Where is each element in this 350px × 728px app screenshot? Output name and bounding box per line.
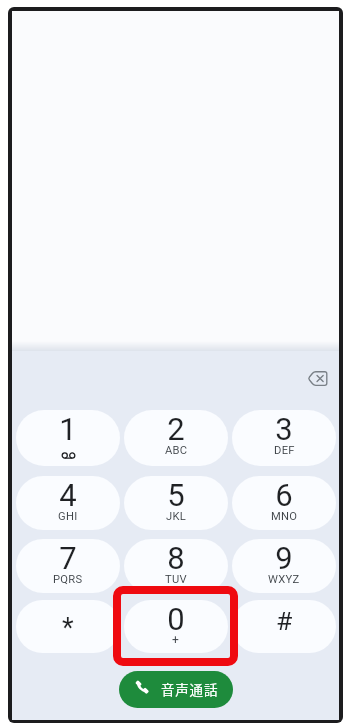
staticText: MNO: [271, 510, 298, 523]
staticText: +: [172, 633, 180, 647]
staticText: #: [276, 605, 293, 636]
staticText: 3: [275, 411, 293, 447]
staticText: JKL: [166, 510, 187, 523]
staticText: *: [62, 612, 74, 644]
staticText: 1: [59, 411, 77, 447]
button[interactable]: 5: [124, 476, 228, 530]
button[interactable]: 7: [16, 539, 120, 593]
button[interactable]: #: [232, 600, 336, 653]
button[interactable]: 3: [232, 410, 336, 466]
staticText: ABC: [165, 444, 188, 457]
button[interactable]: 4: [16, 476, 120, 530]
button[interactable]: 1: [16, 410, 120, 466]
staticText: 4: [59, 477, 77, 513]
staticText: WXYZ: [268, 573, 300, 586]
button[interactable]: 0: [124, 600, 228, 653]
button[interactable]: 8: [124, 539, 228, 593]
staticText: 6: [275, 477, 293, 513]
staticText: 0: [167, 601, 185, 637]
staticText: 5: [167, 477, 185, 513]
staticText: 音声通話: [161, 679, 219, 699]
staticText: 7: [59, 540, 77, 576]
staticText: DEF: [274, 444, 295, 457]
button[interactable]: 2: [124, 410, 228, 466]
staticText: PQRS: [53, 573, 83, 586]
button[interactable]: [299, 362, 335, 394]
button[interactable]: *: [16, 600, 120, 653]
button[interactable]: 6: [232, 476, 336, 530]
button[interactable]: 9: [232, 539, 336, 593]
staticText: GHI: [58, 510, 78, 523]
staticText: TUV: [165, 573, 187, 586]
button[interactable]: 音声通話: [119, 671, 233, 708]
staticText: 2: [167, 411, 185, 447]
staticText: 8: [167, 540, 185, 576]
staticText: 9: [275, 540, 293, 576]
